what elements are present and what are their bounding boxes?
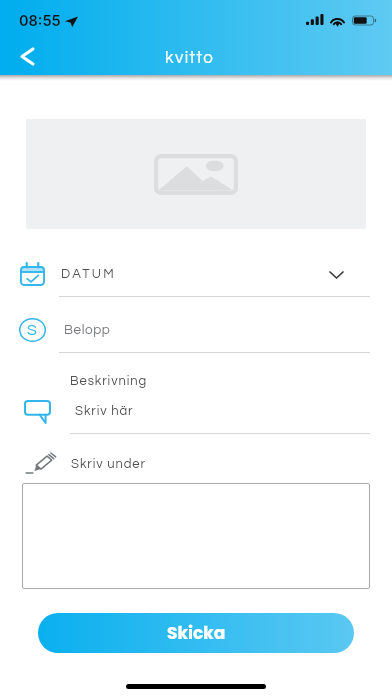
button[interactable]: Back <box>6 35 48 77</box>
staticText: DATUM <box>61 267 116 280</box>
button[interactable]: Skriv här <box>0 394 392 427</box>
staticText: Beskrivning <box>70 374 148 387</box>
button[interactable]: Skicka <box>38 613 354 653</box>
staticText: kvitto <box>165 49 215 67</box>
staticText: Skriv under <box>71 457 146 470</box>
staticText: S <box>27 322 37 338</box>
button[interactable]: Add photo <box>26 119 366 229</box>
button[interactable]: Signature area <box>22 483 370 589</box>
staticText: 08:55 <box>19 12 61 30</box>
button[interactable]: DATUM <box>0 253 392 296</box>
button[interactable]: S <box>0 310 392 350</box>
staticText: Belopp <box>64 323 111 337</box>
staticText: Skriv här <box>75 404 134 417</box>
staticText: Skicka <box>167 621 226 645</box>
